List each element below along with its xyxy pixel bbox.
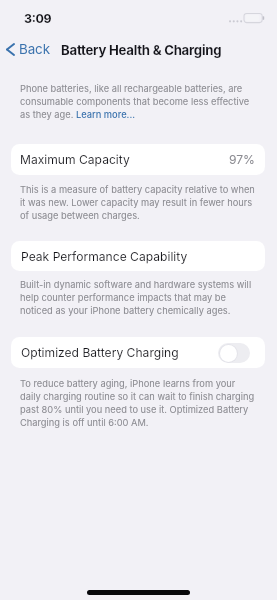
other: Back	[6, 43, 15, 56]
staticText: To reduce battery aging, iPhone learns f…	[20, 377, 256, 429]
button[interactable]: Optimized Battery Charging	[11, 337, 265, 368]
staticText: Built-in dynamic software and hardware s…	[20, 278, 256, 317]
staticText: 3:09	[24, 11, 52, 26]
staticText: 97%	[229, 152, 255, 167]
other: Cellular signal	[229, 16, 244, 23]
staticText: Maximum Capacity	[20, 152, 130, 167]
staticText: Battery Health & Charging	[61, 42, 222, 58]
staticText: Phone batteries, like all rechargeable b…	[20, 82, 257, 121]
staticText: Optimized Battery Charging	[21, 345, 179, 360]
button[interactable]: Optimized Battery Charging toggle	[218, 343, 250, 363]
button[interactable]: Peak Performance Capability	[11, 241, 265, 271]
other: Battery	[244, 13, 265, 24]
staticText: Peak Performance Capability	[21, 249, 188, 264]
staticText: This is a measure of battery capacity re…	[20, 183, 256, 222]
button[interactable]: Back	[0, 38, 56, 60]
button[interactable]: Maximum Capacity	[11, 144, 265, 175]
staticText: Back	[19, 41, 50, 57]
